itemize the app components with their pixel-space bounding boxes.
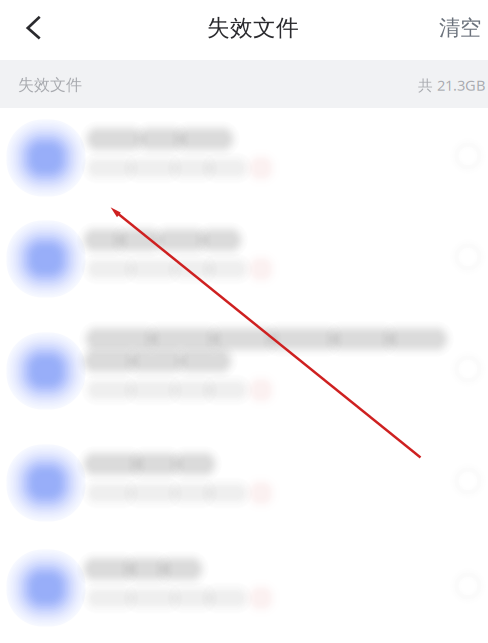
button[interactable]: 清空 — [429, 6, 488, 50]
staticText: 失效文件 — [18, 75, 82, 95]
staticText: 失效文件 — [207, 14, 299, 42]
button[interactable]: Back — [7, 2, 61, 54]
staticText: 共 21.3GB — [418, 75, 486, 95]
staticText: 清空 — [439, 15, 481, 41]
